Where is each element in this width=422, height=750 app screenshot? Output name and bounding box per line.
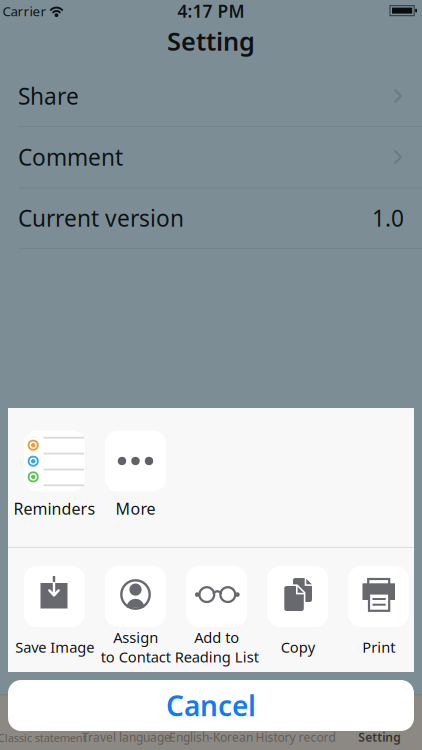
button[interactable]: Print [338, 566, 418, 660]
staticText: Save Image [15, 637, 94, 657]
staticText: More [115, 498, 155, 519]
button[interactable]: English-Korean [165, 695, 257, 750]
button[interactable]: Current version [0, 187, 422, 248]
staticText: Assign to Contact [100, 627, 170, 666]
staticText: 1.0 [372, 203, 404, 233]
button[interactable]: Save Image [14, 566, 94, 660]
staticText: Reminders [13, 498, 95, 519]
staticText: English-Korean [169, 729, 253, 745]
button[interactable]: Reminders [14, 430, 94, 515]
button[interactable]: Comment [0, 126, 422, 187]
staticText: Cancel [166, 687, 256, 724]
button[interactable]: Share [0, 65, 422, 126]
staticText: 4:17 PM [177, 0, 244, 22]
button[interactable]: Assign to Contact [95, 566, 175, 660]
staticText: Setting [358, 729, 401, 745]
button[interactable]: More [95, 430, 175, 515]
staticText: Setting [167, 24, 255, 58]
staticText: Share [18, 81, 79, 111]
button[interactable]: Classic statement [0, 695, 88, 750]
button[interactable]: Cancel [8, 680, 414, 731]
staticText: Carrier [2, 2, 46, 20]
staticText: Comment [18, 142, 123, 172]
staticText: History record [255, 729, 335, 745]
staticText: Current version [18, 203, 184, 233]
button[interactable]: Setting [334, 695, 422, 750]
staticText: Add to Reading List [174, 627, 258, 666]
staticText: Travel language [82, 729, 171, 745]
staticText: Copy [280, 637, 314, 657]
button[interactable]: Copy [257, 566, 337, 660]
staticText: Classic statement [0, 730, 87, 745]
staticText: Print [362, 637, 395, 657]
button[interactable]: Add to Reading List [176, 566, 256, 660]
button[interactable]: Travel language [81, 695, 173, 750]
button[interactable]: History record [249, 695, 341, 750]
